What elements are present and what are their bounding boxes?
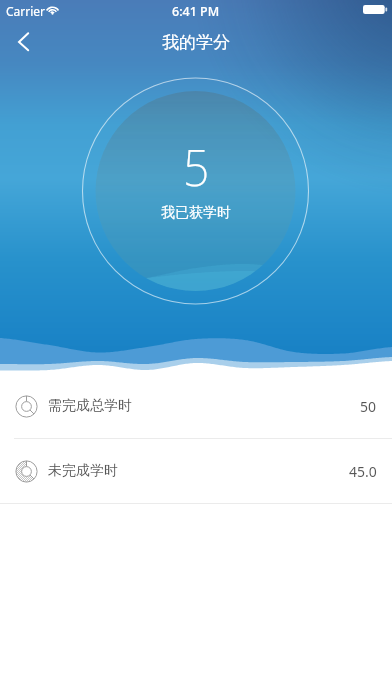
staticText: 6:41 PM [172, 3, 220, 20]
staticText: 我的学分 [162, 32, 230, 53]
staticText: 5 [183, 132, 210, 199]
staticText: 我已获学时 [161, 204, 231, 222]
button[interactable]: 未完成学时 [0, 439, 392, 503]
staticText: 45.0 [349, 462, 377, 481]
button[interactable]: Back [0, 20, 44, 64]
staticText: Carrier [6, 3, 46, 19]
staticText: 未完成学时 [48, 462, 118, 480]
staticText: 50 [360, 397, 377, 416]
staticText: 需完成总学时 [48, 397, 132, 415]
button[interactable]: 需完成总学时 [0, 374, 392, 438]
